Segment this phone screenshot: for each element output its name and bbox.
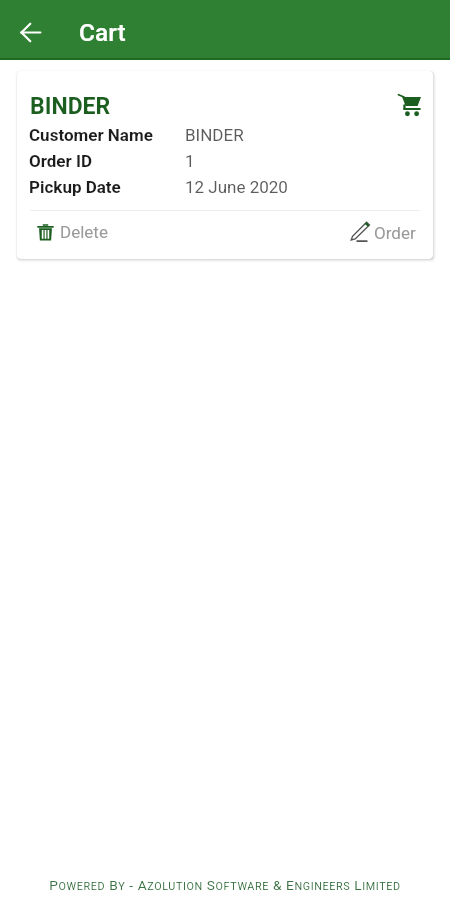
staticText: 1: [185, 151, 195, 171]
button[interactable]: Add to cart: [395, 91, 423, 119]
staticText: 12 June 2020: [185, 177, 288, 197]
staticText: Delete: [60, 222, 108, 242]
staticText: Pickup Date: [29, 177, 185, 197]
staticText: Customer Name: [29, 125, 185, 145]
staticText: Order: [374, 223, 416, 243]
staticText: Cart: [79, 18, 126, 47]
staticText: POWERED BY - AZOLUTION SOFTWARE & ENGINE…: [49, 877, 401, 893]
staticText: BINDER: [30, 93, 111, 120]
button[interactable]: Order: [346, 221, 416, 244]
button[interactable]: Delete: [34, 221, 108, 243]
button[interactable]: Back: [0, 0, 60, 60]
staticText: BINDER: [185, 125, 244, 145]
staticText: Order ID: [29, 151, 185, 171]
